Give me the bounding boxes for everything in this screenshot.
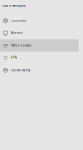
staticText: Состояние: [11, 19, 26, 22]
staticText: VPN: [11, 56, 17, 60]
button[interactable]: Состояние: [0, 14, 83, 27]
staticText: Набор номера: [11, 44, 31, 47]
button[interactable]: VPN: [0, 52, 83, 64]
button[interactable]: Набор номера: [0, 39, 83, 52]
button[interactable]: Ethernet: [0, 27, 83, 39]
staticText: Прокси-сервер: [11, 68, 31, 72]
staticText: Ethernet: [11, 31, 23, 35]
staticText: Сеть и Интернет: [2, 4, 25, 7]
button[interactable]: Прокси-сервер: [0, 64, 83, 76]
